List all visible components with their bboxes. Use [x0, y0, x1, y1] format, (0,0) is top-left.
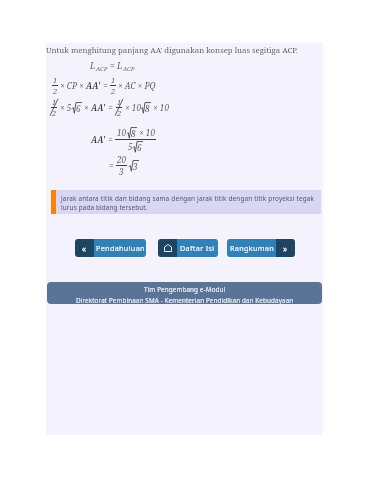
- button[interactable]: Previous: Pendahuluan: [75, 239, 146, 257]
- staticText: =: [110, 60, 115, 72]
- staticText: 6: [137, 142, 142, 153]
- staticText: 1: [111, 75, 116, 85]
- staticText: AA': [86, 80, 101, 91]
- staticText: Daftar Isi: [180, 243, 215, 253]
- staticText: AA': [91, 102, 106, 113]
- staticText: =: [101, 80, 110, 91]
- staticText: Jarak antara titik dan bidang sama denga…: [61, 194, 314, 212]
- staticText: × 10: [137, 127, 155, 138]
- staticText: L: [117, 60, 123, 72]
- staticText: Pendahuluan: [96, 243, 145, 253]
- staticText: Tim Pengembang e-Modul: [144, 285, 226, 294]
- staticText: AA': [91, 134, 106, 145]
- staticText: × 5: [58, 102, 72, 113]
- staticText: Untuk menghitung panjang AA' digunakan k…: [46, 45, 299, 56]
- staticText: 20: [117, 154, 127, 165]
- staticText: 2: [117, 108, 122, 118]
- staticText: Rangkuman: [230, 243, 274, 253]
- staticText: «: [82, 243, 87, 254]
- staticText: =: [109, 160, 116, 171]
- staticText: ACP: [96, 65, 108, 73]
- staticText: =: [106, 134, 115, 145]
- staticText: Direktorat Pembinaan SMA - Kementerian P…: [76, 296, 294, 304]
- staticText: ACP: [123, 65, 135, 73]
- staticText: 5: [128, 141, 133, 152]
- staticText: 8: [145, 103, 150, 114]
- staticText: 1: [117, 97, 122, 107]
- staticText: 8: [131, 128, 136, 139]
- staticText: × AC × PQ: [116, 80, 156, 91]
- staticText: »: [283, 243, 288, 254]
- staticText: 6: [76, 103, 81, 114]
- button[interactable]: Next: Rangkuman: [227, 239, 295, 257]
- staticText: 10: [117, 127, 127, 138]
- staticText: × CP ×: [58, 80, 86, 91]
- button[interactable]: Home: Daftar Isi: [158, 239, 218, 257]
- staticText: 2: [52, 108, 57, 118]
- staticText: × 10: [123, 102, 141, 113]
- staticText: 1: [52, 97, 57, 107]
- staticText: 2: [111, 86, 116, 96]
- staticText: 1: [53, 75, 58, 85]
- staticText: 2: [53, 86, 58, 96]
- staticText: × 10: [151, 102, 169, 113]
- staticText: 3: [133, 161, 138, 172]
- staticText: =: [106, 102, 115, 113]
- staticText: L: [90, 60, 96, 72]
- staticText: ×: [82, 102, 91, 113]
- staticText: 3: [119, 166, 124, 177]
- button[interactable]: Jarak antara titik dan bidang sama denga…: [51, 190, 321, 214]
